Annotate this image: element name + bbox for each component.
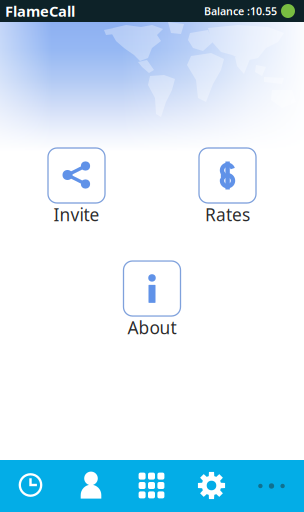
button[interactable]: Invite <box>48 148 105 226</box>
button[interactable]: More <box>244 460 304 512</box>
staticText: Invite <box>53 203 99 226</box>
button[interactable]: Recents <box>0 460 61 512</box>
button[interactable]: Keypad <box>122 460 183 512</box>
button[interactable]: Contacts <box>61 460 122 512</box>
button[interactable]: About <box>123 261 180 339</box>
staticText: Rates <box>205 203 250 226</box>
staticText: About <box>127 316 176 339</box>
button[interactable]: Rates <box>199 148 256 226</box>
button[interactable]: Settings <box>183 460 244 512</box>
staticText: Balance :10.55 <box>204 4 277 18</box>
staticText: FlameCall <box>5 1 75 21</box>
